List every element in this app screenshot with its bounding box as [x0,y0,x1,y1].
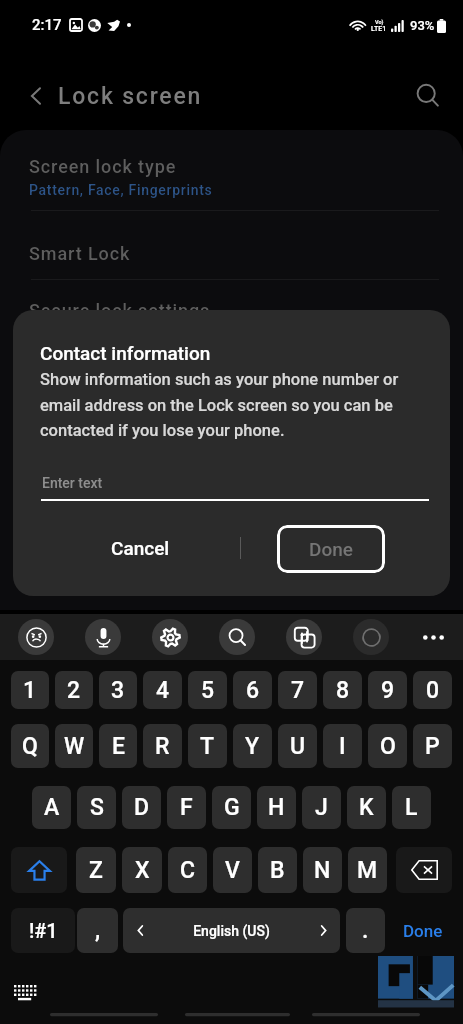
staticText: Y [245,733,260,760]
staticText: P [425,733,440,760]
button[interactable]: Emoji [18,619,54,655]
staticText: S [90,794,104,821]
button[interactable]: 8 [323,671,362,709]
staticText: X [135,857,150,884]
button[interactable]: G [212,786,251,829]
staticText: Z [89,857,103,884]
staticText: , [95,917,101,944]
button[interactable]: I [323,724,362,768]
button[interactable]: More options [415,619,451,655]
staticText: Enter text [42,475,103,491]
button[interactable]: O [368,724,407,768]
staticText: I [339,733,346,760]
staticText: Done [403,921,443,941]
button[interactable]: Search [219,619,255,655]
button[interactable]: !#1 [11,908,75,953]
button[interactable]: 5 [188,671,227,709]
button[interactable]: L [392,786,431,829]
button[interactable]: V [213,847,252,893]
button[interactable]: U [278,724,317,768]
button[interactable]: D [122,786,161,829]
button[interactable]: Smart Lock [0,223,463,279]
staticText: C [180,857,196,884]
staticText: B [270,857,285,884]
staticText: U [290,733,306,760]
button[interactable]: R [143,724,182,768]
button[interactable]: 0 [413,671,452,709]
button[interactable]: Done [391,908,455,953]
staticText: H [268,794,285,821]
button[interactable]: C [168,847,207,893]
button[interactable]: H [257,786,296,829]
button[interactable]: B [258,847,297,893]
staticText: !#1 [29,919,58,942]
staticText: 4 [156,677,170,704]
button[interactable]: J [302,786,341,829]
button[interactable]: T [188,724,227,768]
button[interactable]: P [413,724,452,768]
staticText: Vo) [375,19,384,25]
staticText: 1 [23,677,37,704]
button[interactable]: Screen lock type [0,140,463,212]
button[interactable]: 2 [55,671,93,709]
staticText: J [315,794,328,821]
button[interactable]: A [32,786,71,829]
button[interactable]: 7 [278,671,317,709]
staticText: English (US) [157,923,306,939]
button[interactable]: Handwriting [353,619,389,655]
staticText: L [405,794,418,821]
button[interactable]: Search [415,83,441,109]
staticText: V [225,857,240,884]
button[interactable]: X [122,847,162,893]
staticText: 8 [336,677,350,704]
button[interactable]: 4 [143,671,182,709]
staticText: 5 [201,677,215,704]
button[interactable]: Translate [286,619,322,655]
staticText: 93% [410,18,435,33]
button[interactable]: 6 [233,671,272,709]
button[interactable]: English (US) [123,908,340,953]
staticText: Secure lock settings [29,300,211,321]
button[interactable]: Done [277,525,385,573]
staticText: Smart Lock [29,243,131,264]
button[interactable]: M [348,847,387,893]
button[interactable]: F [167,786,206,829]
staticText: A [44,794,60,821]
staticText: Contact information [40,342,211,364]
button[interactable]: Y [233,724,272,768]
button[interactable]: E [99,724,137,768]
button[interactable]: Cancel [90,524,190,572]
staticText: Q [22,733,38,760]
button[interactable]: Z [76,847,116,893]
staticText: Done [309,538,353,560]
staticText: D [134,794,150,821]
staticText: N [314,857,331,884]
button[interactable]: 3 [99,671,137,709]
staticText: 7 [291,677,305,704]
button[interactable]: W [55,724,93,768]
button[interactable]: Backspace [396,847,452,893]
button[interactable]: 9 [368,671,407,709]
staticText: Show information such as your phone numb… [40,370,425,440]
button[interactable]: 1 [11,671,49,709]
button[interactable]: Shift [11,847,67,893]
staticText: 3 [111,677,125,704]
staticText: W [64,733,85,760]
button[interactable]: N [303,847,342,893]
staticText: 9 [381,677,395,704]
button[interactable]: Secure lock settings [0,280,463,336]
staticText: 6 [246,677,260,704]
staticText: O [380,733,396,760]
button[interactable]: Hide keyboard [14,985,38,1003]
staticText: 2:17 [32,16,62,34]
button[interactable]: K [347,786,386,829]
staticText: . [362,917,369,944]
button[interactable]: S [77,786,116,829]
button[interactable]: Q [11,724,49,768]
button[interactable]: , [77,908,118,953]
button[interactable]: Back [22,81,52,111]
button[interactable]: Voice input [85,619,121,655]
button[interactable]: Settings [152,619,188,655]
button[interactable]: . [346,908,385,953]
staticText: K [359,794,374,821]
